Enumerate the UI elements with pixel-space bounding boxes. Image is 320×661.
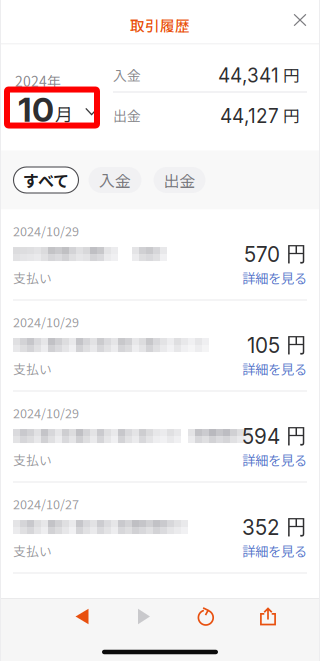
staticText: 入金 — [113, 65, 141, 85]
staticText: 支払い — [13, 450, 52, 469]
staticText: 44,341 — [218, 64, 279, 87]
button[interactable]: 共有 — [237, 599, 299, 633]
button[interactable]: 再読み込み — [175, 599, 237, 633]
staticText: 月 — [55, 100, 73, 127]
button[interactable]: 閉じる — [280, 0, 320, 40]
staticText: 44,127 — [220, 105, 279, 128]
staticText: 入金 — [99, 168, 131, 192]
staticText: 2024/10/29 — [13, 404, 79, 422]
staticText: 594 円 — [242, 423, 307, 449]
staticText: 352 円 — [242, 514, 307, 540]
staticText: 2024/10/29 — [13, 313, 79, 331]
staticText: 2024/10/27 — [13, 495, 79, 513]
staticText: 570 円 — [244, 241, 307, 267]
button[interactable]: 2024/10/29 — [0, 391, 320, 481]
staticText: 詳細を見る — [242, 268, 307, 287]
staticText: すべて — [23, 168, 69, 192]
staticText: 円 — [283, 62, 300, 86]
button[interactable]: 2024/10/29 — [0, 209, 320, 299]
staticText: 2024/10/29 — [13, 222, 79, 240]
staticText: 円 — [283, 103, 300, 127]
button[interactable]: 2024/10/29 — [0, 300, 320, 390]
staticText: 出金 — [113, 105, 141, 126]
button[interactable]: 入金 — [88, 167, 141, 193]
staticText: 支払い — [13, 268, 52, 287]
staticText: 出金 — [163, 168, 195, 192]
staticText: 10 — [18, 89, 54, 130]
button[interactable]: 進む — [113, 599, 175, 633]
staticText: 支払い — [13, 359, 52, 378]
button[interactable]: 出金 — [153, 167, 205, 193]
staticText: 105 円 — [247, 332, 307, 358]
staticText: 取引履歴 — [130, 14, 190, 36]
button[interactable]: 10 — [18, 94, 104, 124]
button[interactable]: すべて — [13, 167, 78, 193]
staticText: 2024年 — [15, 70, 61, 91]
button[interactable]: 2024/10/27 — [0, 482, 320, 572]
staticText: 詳細を見る — [242, 359, 307, 378]
staticText: 詳細を見る — [242, 541, 307, 560]
button[interactable]: 戻る — [51, 599, 113, 633]
staticText: 詳細を見る — [242, 450, 307, 469]
staticText: 支払い — [13, 541, 52, 560]
